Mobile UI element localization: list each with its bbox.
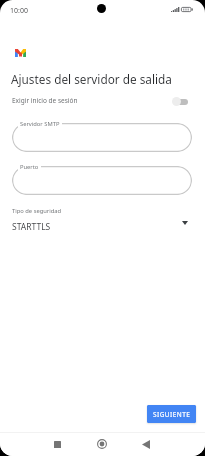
button[interactable] (12, 166, 192, 195)
button[interactable]: Exigir inicio de sesión (0, 92, 205, 110)
button[interactable]: Recent apps (45, 432, 69, 456)
button[interactable]: Tipo de seguridad (0, 207, 205, 233)
staticText: Tipo de seguridad (12, 207, 62, 215)
staticText: Exigir inicio de sesión (12, 96, 78, 105)
staticText: STARTTLS (12, 221, 51, 233)
staticText: Puerto (20, 163, 39, 171)
staticText: SIGUIENTE (153, 410, 191, 419)
button[interactable]: Back (134, 432, 158, 456)
button[interactable] (12, 123, 192, 152)
staticText: Ajustes del servidor de salida (11, 71, 172, 87)
staticText: 10:00 (10, 6, 28, 16)
staticText: Servidor SMTP (20, 120, 60, 128)
button[interactable]: Home (90, 432, 114, 456)
button[interactable]: SIGUIENTE (147, 405, 196, 423)
